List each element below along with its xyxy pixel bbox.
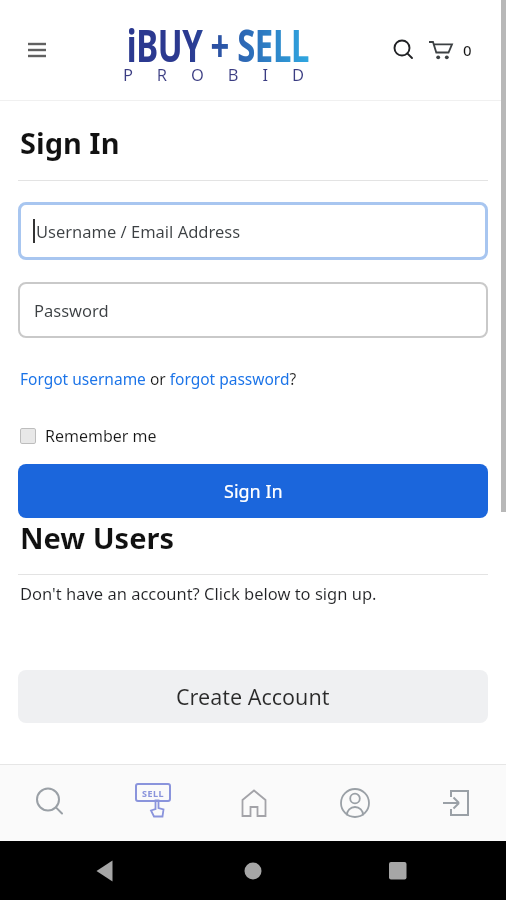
- staticText: 0: [463, 40, 472, 60]
- staticText: Remember me: [45, 425, 157, 447]
- button[interactable]: [428, 37, 454, 63]
- button[interactable]: [203, 765, 304, 841]
- button[interactable]: Password: [18, 282, 488, 338]
- button[interactable]: [386, 859, 410, 883]
- button[interactable]: Remember me: [20, 425, 157, 447]
- staticText: iBUY + SELL: [127, 14, 309, 75]
- button[interactable]: [392, 38, 416, 62]
- button[interactable]: Forgot username or forgot password?: [20, 368, 297, 389]
- button[interactable]: [241, 859, 265, 883]
- staticText: SELL: [142, 787, 165, 799]
- staticText: Password: [34, 299, 109, 321]
- button[interactable]: Username / Email Address: [18, 202, 488, 260]
- button[interactable]: Create Account: [18, 670, 488, 723]
- button[interactable]: [405, 765, 506, 841]
- button[interactable]: Sign In: [18, 464, 488, 518]
- button[interactable]: iBUY + SELL: [93, 14, 343, 97]
- staticText: New Users: [20, 518, 174, 557]
- button[interactable]: [0, 765, 102, 841]
- staticText: Sign In: [20, 123, 120, 162]
- staticText: Create Account: [176, 682, 330, 711]
- staticText: P R O B I D: [123, 63, 314, 85]
- staticText: Username / Email Address: [36, 220, 241, 242]
- staticText: Sign In: [224, 479, 283, 504]
- button[interactable]: SELL: [102, 765, 203, 841]
- button[interactable]: [13, 26, 61, 74]
- button[interactable]: [304, 765, 405, 841]
- staticText: Don't have an account? Click below to si…: [20, 582, 377, 604]
- button[interactable]: [93, 859, 117, 883]
